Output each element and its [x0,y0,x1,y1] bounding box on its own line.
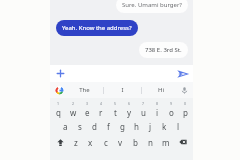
staticText: u [141,107,146,118]
button[interactable]: Voice input [179,85,190,96]
staticText: 5 [114,101,117,106]
staticText: The [79,86,90,94]
staticText: b [133,137,138,148]
staticText: Hi [158,86,164,94]
button[interactable]: 0 [178,101,192,118]
staticText: 2 [72,101,75,106]
staticText: 7 [142,101,145,106]
button[interactable]: b [128,134,143,150]
staticText: q [56,107,61,118]
staticText: i [156,107,159,118]
button[interactable]: Shift [51,134,69,150]
staticText: 3 [86,101,89,106]
staticText: t [114,107,117,118]
staticText: 738 E. 3rd St. [145,46,182,54]
staticText: g [120,121,125,132]
staticText: z [74,137,78,148]
button[interactable]: 9 [164,101,178,118]
button[interactable]: Send [176,67,189,80]
button[interactable]: z [69,134,83,150]
staticText: 6 [128,101,131,106]
button[interactable]: h [129,118,143,134]
button[interactable]: 7 [136,101,150,118]
staticText: 0 [184,101,187,106]
staticText: d [92,121,97,132]
button[interactable]: c [98,134,113,150]
staticText: r [99,107,103,118]
staticText: 1 [57,101,60,106]
button[interactable]: Sure. Umami burger? [116,0,188,13]
staticText: e [85,107,90,118]
button[interactable]: s [73,118,87,134]
button[interactable]: 5 [108,101,122,118]
staticText: j [149,121,152,132]
staticText: v [118,137,123,148]
button[interactable]: Hi [142,82,179,98]
staticText: k [162,121,167,132]
staticText: c [104,137,108,148]
button[interactable]: j [143,118,157,134]
button[interactable]: a [58,118,73,134]
button[interactable]: I [104,82,141,98]
button[interactable]: m [158,134,173,150]
staticText: a [63,121,68,132]
staticText: s [78,121,82,132]
button[interactable]: 4 [94,101,108,118]
button[interactable]: d [87,118,101,134]
staticText: h [134,121,139,132]
button[interactable]: The [65,82,103,98]
staticText: l [177,121,180,132]
staticText: 9 [170,101,173,106]
button[interactable]: 2 [66,101,80,118]
staticText: 8 [156,101,159,106]
button[interactable]: f [101,118,115,134]
staticText: w [70,107,77,118]
button[interactable]: Google [54,85,65,96]
button[interactable]: Yeah. Know the address? [56,20,138,36]
staticText: f [107,121,110,132]
staticText: Sure. Umami burger? [122,1,182,9]
button[interactable]: 3 [80,101,94,118]
button[interactable]: x [83,134,98,150]
staticText: Yeah. Know the address? [62,24,132,32]
button[interactable]: 738 E. 3rd St. [139,42,188,58]
staticText: n [148,137,153,148]
button[interactable]: Backspace [173,134,192,150]
button[interactable]: n [143,134,158,150]
button[interactable]: v [113,134,128,150]
staticText: m [162,137,170,148]
button[interactable]: 6 [122,101,136,118]
staticText: x [88,137,93,148]
button[interactable]: 8 [150,101,164,118]
staticText: 4 [100,101,103,106]
staticText: p [183,107,188,118]
staticText: I [121,86,124,94]
staticText: y [127,107,132,118]
staticText: o [169,107,174,118]
button[interactable]: k [157,118,171,134]
button[interactable]: l [171,118,185,134]
button[interactable]: g [115,118,129,134]
button[interactable]: Add attachment [54,67,67,80]
button[interactable]: 1 [51,101,66,118]
